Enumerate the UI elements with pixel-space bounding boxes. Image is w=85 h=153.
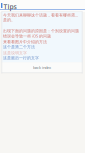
staticText: 是的。: [3, 17, 15, 22]
staticText: 这是最后一行的文字: [3, 55, 39, 60]
staticText: 这个是第二个方法: [3, 44, 35, 49]
staticText: 出现下面的问题的原因是：个别设置的问题: [3, 28, 79, 33]
button[interactable]: back index: [0, 0, 85, 153]
staticText: 今天我们来聊聊这个话题，看看有哪些需要注意的地方呢: [3, 12, 81, 18]
staticText: 这是说明文字: [3, 50, 27, 55]
staticText: Tips: [4, 2, 17, 11]
staticText: 来看看图片中介绍的方法: [3, 39, 47, 44]
staticText: back index: [33, 65, 51, 70]
staticText: 错误会导致一些 iOS 的问题: [3, 33, 51, 39]
